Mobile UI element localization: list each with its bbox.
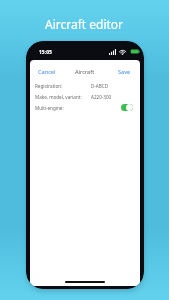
button[interactable]: Multi-engine: bbox=[30, 102, 140, 113]
button[interactable]: Make, model, variant: bbox=[30, 91, 140, 102]
staticText: 15:05 bbox=[39, 49, 52, 56]
staticText: Save bbox=[118, 68, 131, 76]
button[interactable]: Save bbox=[115, 65, 140, 79]
button[interactable]: Cancel bbox=[30, 65, 59, 79]
staticText: Make, model, variant: bbox=[35, 94, 82, 100]
staticText: Registration: bbox=[35, 83, 63, 89]
button[interactable]: Registration: bbox=[30, 80, 140, 91]
staticText: Cancel bbox=[38, 68, 56, 76]
button[interactable]: Multi-engine toggle, on bbox=[121, 104, 133, 111]
staticText: Aircraft bbox=[75, 68, 95, 76]
staticText: Multi-engine: bbox=[35, 105, 64, 111]
staticText: A220-300 bbox=[91, 94, 112, 100]
staticText: D-ABCD bbox=[91, 83, 109, 89]
staticText: Aircraft editor bbox=[45, 16, 124, 32]
